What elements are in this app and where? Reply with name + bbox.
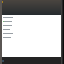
button[interactable] bbox=[3, 36, 64, 38]
button[interactable] bbox=[3, 20, 64, 22]
button[interactable] bbox=[3, 24, 64, 26]
button[interactable]: App logo bbox=[1, 1, 3, 3]
button[interactable] bbox=[3, 32, 64, 34]
button[interactable] bbox=[3, 28, 64, 30]
button[interactable] bbox=[3, 16, 64, 18]
